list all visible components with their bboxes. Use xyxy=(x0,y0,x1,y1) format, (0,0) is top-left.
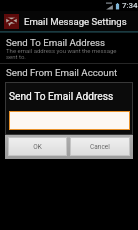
button[interactable]: Cancel xyxy=(70,137,130,156)
button[interactable]: OK xyxy=(8,137,67,156)
button[interactable]: Send From Email Account xyxy=(0,64,138,92)
staticText: 7:34 xyxy=(122,1,138,10)
button[interactable]: Send To Email Address xyxy=(0,33,138,63)
staticText: Send To Email Address xyxy=(9,91,114,103)
button[interactable]: Email Message Settings icon xyxy=(0,11,138,31)
staticText: The email address you want the message s… xyxy=(6,47,117,60)
staticText: Send From Email Account xyxy=(6,67,118,78)
staticText: Cancel xyxy=(90,143,110,151)
staticText: OK xyxy=(33,143,42,151)
button[interactable] xyxy=(9,111,130,130)
staticText: Send To Email Address xyxy=(6,37,106,48)
other: Email Message Settings icon xyxy=(4,14,19,29)
staticText: Email Message Settings xyxy=(24,16,127,27)
